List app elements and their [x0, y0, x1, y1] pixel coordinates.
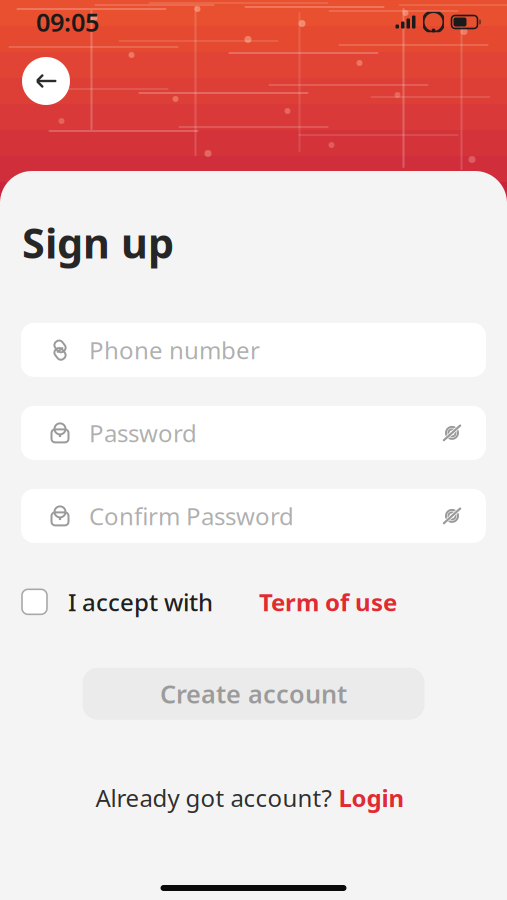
staticText: Login: [338, 782, 404, 814]
staticText: 09:05: [36, 5, 99, 39]
staticText: Term of use: [259, 586, 397, 618]
staticText: Password: [89, 417, 197, 449]
staticText: Create account: [160, 677, 347, 710]
staticText: I accept with: [68, 586, 213, 618]
button[interactable]: Back: [22, 57, 70, 105]
button[interactable]: Show password: [430, 494, 474, 538]
button[interactable]: Login: [331, 776, 411, 820]
button[interactable]: I accept with: [22, 580, 213, 624]
button[interactable]: Term of use: [251, 580, 405, 624]
staticText: Sign up: [22, 215, 174, 270]
staticText: Already got account?: [95, 782, 331, 814]
button[interactable]: Create account: [82, 668, 424, 720]
staticText: Phone number: [89, 334, 260, 366]
staticText: Confirm Password: [89, 500, 294, 532]
button[interactable]: Show password: [430, 411, 474, 455]
